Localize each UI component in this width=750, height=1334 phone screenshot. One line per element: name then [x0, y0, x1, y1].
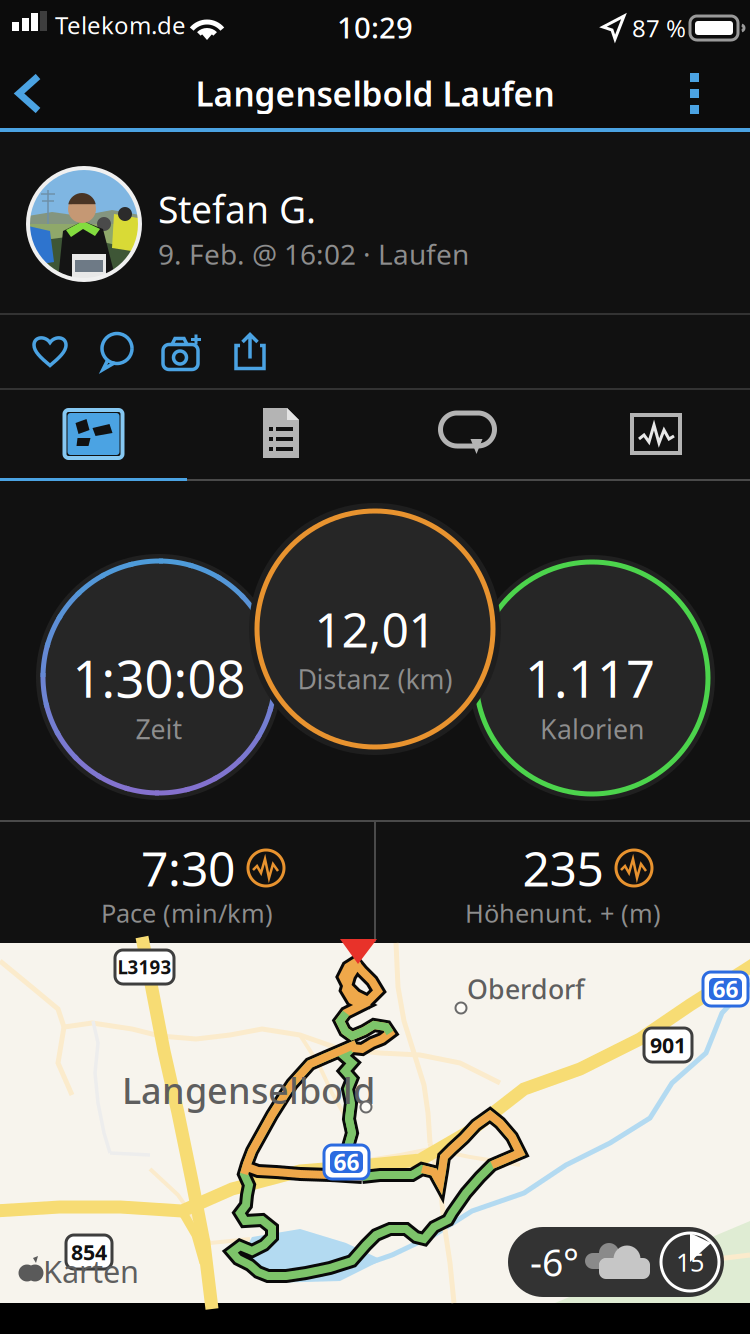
staticText: 901 — [650, 1031, 686, 1059]
staticText: Karten — [43, 1251, 139, 1291]
staticText: Kalorien — [540, 711, 644, 747]
button[interactable]: Add photo — [151, 315, 215, 388]
staticText: 15 — [676, 1245, 704, 1279]
staticText: Langenselbold Laufen — [195, 71, 554, 116]
staticText: Höhenunt. + (m) — [465, 896, 661, 930]
staticText: Stefan G. — [158, 184, 316, 234]
staticText: 12,01 — [314, 597, 435, 661]
staticText: L3193 — [117, 955, 171, 979]
staticText: 10:29 — [337, 7, 413, 46]
staticText: Oberdorf — [467, 971, 585, 1007]
button[interactable]: Comment — [85, 315, 149, 388]
staticText: 87 % — [632, 12, 686, 44]
button[interactable]: 235 — [376, 822, 750, 942]
staticText: 7:30 — [141, 836, 235, 900]
staticText: -6° — [530, 1237, 579, 1287]
staticText: Pace (min/km) — [101, 896, 273, 930]
button[interactable]: Charts — [562, 390, 750, 478]
button[interactable]: Map — [0, 390, 187, 478]
staticText: 66 — [712, 974, 738, 1004]
button[interactable]: Share — [218, 315, 282, 388]
staticText: Distanz (km) — [297, 661, 452, 697]
staticText: Telekom.de — [55, 9, 186, 41]
button[interactable]: Laps — [375, 390, 562, 478]
button[interactable]: Details — [187, 390, 375, 478]
staticText: 1.117 — [525, 644, 655, 712]
staticText: 1:30:08 — [72, 644, 245, 712]
button[interactable]: Back — [0, 55, 76, 132]
staticText: Langenselbold — [122, 1066, 375, 1114]
staticText: 9. Feb. @ 16:02 · Laufen — [158, 235, 469, 273]
button[interactable]: Like — [18, 315, 82, 388]
button[interactable]: Stefan G. — [0, 132, 750, 313]
staticText: 235 — [522, 836, 603, 900]
staticText: Zeit — [135, 711, 182, 747]
button[interactable]: 7:30 — [0, 822, 374, 942]
staticText: 66 — [333, 1147, 359, 1177]
staticText: 854 — [71, 1238, 107, 1266]
button[interactable]: More options — [663, 55, 727, 132]
